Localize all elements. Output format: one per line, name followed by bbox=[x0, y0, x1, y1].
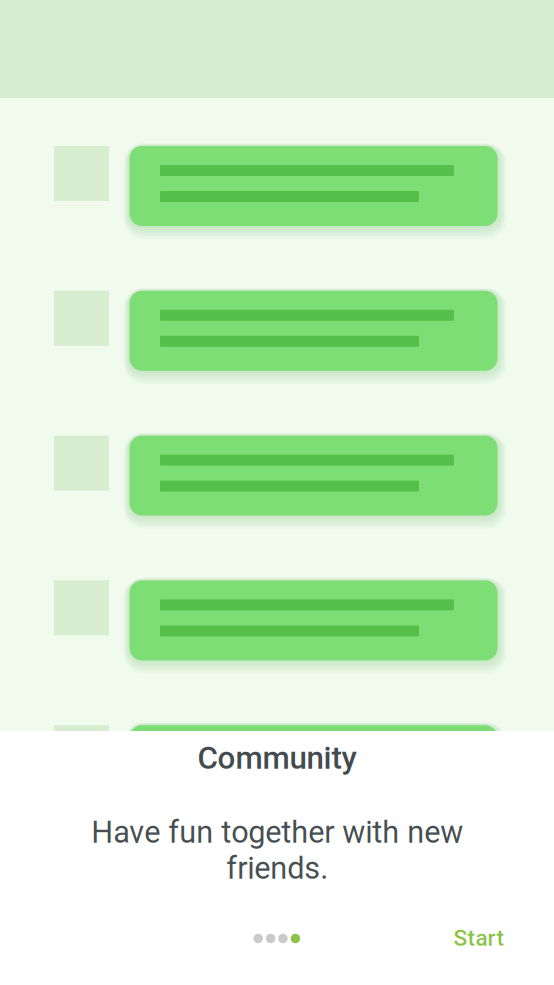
button[interactable]: Page 1 bbox=[253, 934, 263, 943]
button[interactable]: Page 3 bbox=[278, 934, 288, 943]
button[interactable]: Page 2 bbox=[266, 934, 275, 943]
staticText: Community bbox=[197, 740, 356, 776]
staticText: Have fun together with new friends. bbox=[91, 814, 463, 886]
staticText: Start bbox=[453, 925, 504, 951]
button[interactable]: Start bbox=[431, 916, 527, 960]
button[interactable]: Page 4, current page bbox=[291, 934, 300, 943]
